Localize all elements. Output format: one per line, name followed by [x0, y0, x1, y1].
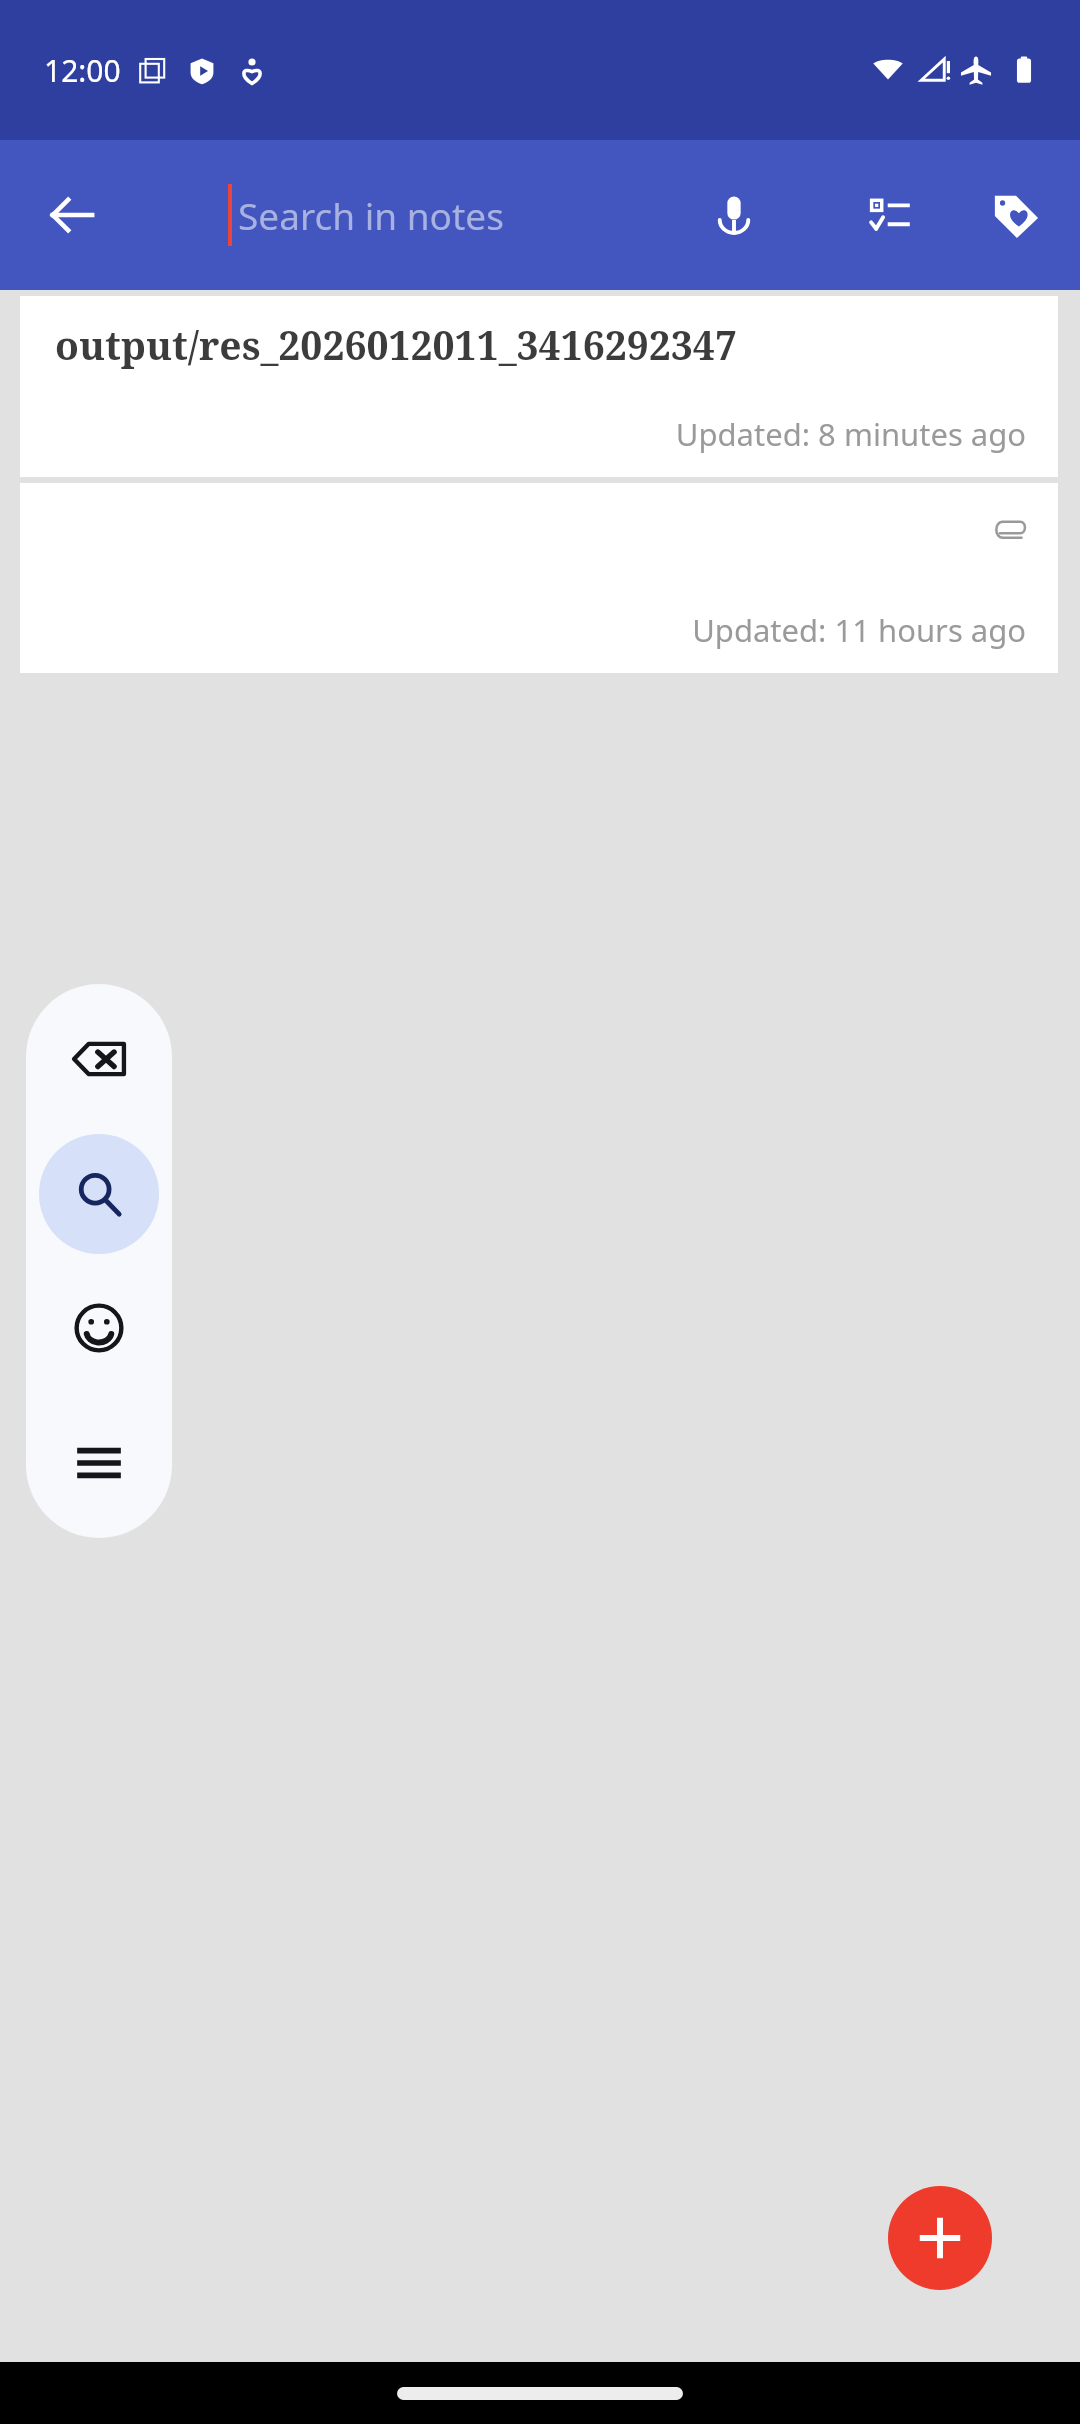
button[interactable]: Create new note	[888, 2186, 992, 2290]
staticText: Updated: 11 hours ago	[692, 609, 1026, 651]
button[interactable]: Search	[39, 1134, 159, 1254]
button[interactable]: Menu	[39, 1403, 159, 1523]
button[interactable]: Labels	[972, 171, 1060, 259]
button[interactable]: output/res_2026012011_3416292347	[20, 296, 1058, 477]
staticText: Search in notes	[238, 190, 504, 240]
button[interactable]: Updated: 11 hours ago	[20, 483, 1058, 673]
button[interactable]: Search in notes	[228, 169, 504, 261]
staticText: output/res_2026012011_3416292347	[55, 318, 737, 371]
button[interactable]: New checklist	[846, 171, 934, 259]
button[interactable]: Back	[26, 169, 118, 261]
staticText: 12:00	[44, 50, 121, 91]
button[interactable]: Voice search	[690, 171, 778, 259]
button[interactable]: Backspace	[39, 999, 159, 1119]
staticText: Updated: 8 minutes ago	[675, 413, 1026, 455]
button[interactable]: Emoji	[39, 1268, 159, 1388]
